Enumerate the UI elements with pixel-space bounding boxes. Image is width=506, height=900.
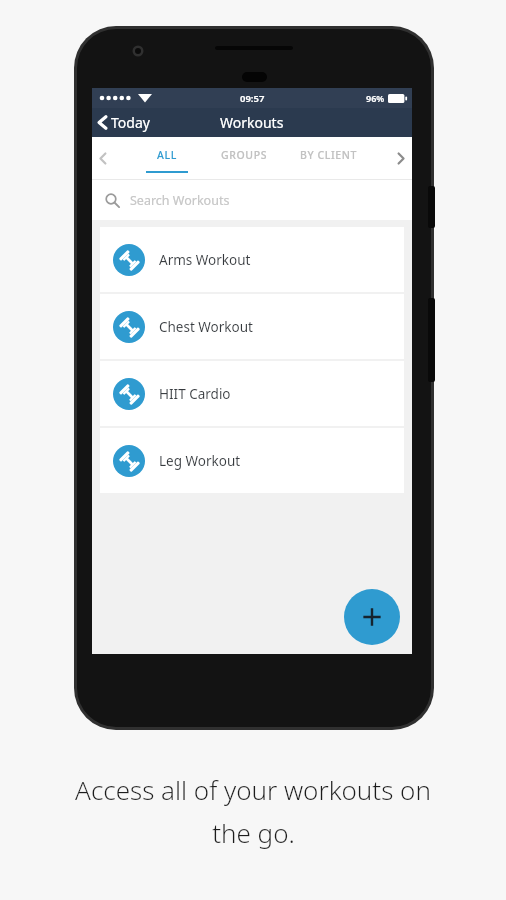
button[interactable]: More tabs	[390, 137, 412, 179]
staticText: BY CLIENT	[300, 148, 358, 162]
button[interactable]: Leg Workout	[100, 428, 404, 493]
staticText: Arms Workout	[159, 251, 251, 269]
button[interactable]: Today	[92, 109, 160, 136]
staticText: Workouts	[220, 113, 284, 132]
staticText: Chest Workout	[159, 318, 253, 336]
staticText: Access all of your workouts on	[75, 772, 431, 807]
staticText: the go.	[212, 815, 295, 850]
button[interactable]: Previous tabs	[92, 137, 114, 179]
staticText: Today	[111, 113, 150, 132]
staticText: 96%	[366, 92, 385, 104]
staticText: ALL	[157, 148, 177, 162]
button[interactable]: Arms Workout	[100, 227, 404, 292]
button[interactable]: HIIT Cardio	[100, 361, 404, 426]
button[interactable]: Search Workouts	[92, 180, 412, 220]
button[interactable]: GROUPS	[221, 137, 268, 179]
staticText: 09:57	[240, 92, 265, 105]
button[interactable]: Add workout	[344, 589, 400, 645]
staticText: HIIT Cardio	[159, 385, 231, 403]
staticText: Leg Workout	[159, 452, 241, 470]
staticText: GROUPS	[221, 148, 268, 162]
button[interactable]: ALL	[146, 137, 188, 179]
button[interactable]: Chest Workout	[100, 294, 404, 359]
staticText: Search Workouts	[130, 192, 230, 209]
button[interactable]: BY CLIENT	[300, 137, 358, 179]
